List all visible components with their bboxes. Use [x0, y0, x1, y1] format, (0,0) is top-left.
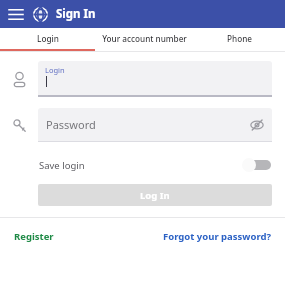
button[interactable]: Register	[12, 226, 56, 247]
staticText: Save login	[39, 159, 85, 172]
button[interactable]: Login	[0, 28, 95, 49]
button[interactable]: Forgot your password?	[161, 226, 273, 247]
button[interactable]: Show password	[247, 115, 267, 135]
staticText: Password	[46, 117, 96, 132]
staticText: Log In	[140, 189, 170, 202]
staticText: Register	[14, 230, 54, 243]
button[interactable]: Save login	[39, 155, 272, 175]
staticText: Phone	[227, 33, 252, 44]
button[interactable]: Log In	[38, 184, 272, 206]
button[interactable]: Phone	[194, 28, 285, 49]
button[interactable]: Login	[38, 61, 272, 97]
staticText: Your account number	[102, 33, 187, 44]
staticText: Login	[37, 33, 59, 44]
button[interactable]: Open navigation menu	[5, 3, 27, 25]
button[interactable]: Change language	[30, 4, 50, 24]
button[interactable]: Your account number	[95, 28, 194, 49]
staticText: Sign In	[56, 6, 96, 22]
staticText: Forgot your password?	[163, 230, 271, 243]
staticText: Login	[45, 65, 65, 75]
button[interactable]: Password	[38, 108, 272, 142]
